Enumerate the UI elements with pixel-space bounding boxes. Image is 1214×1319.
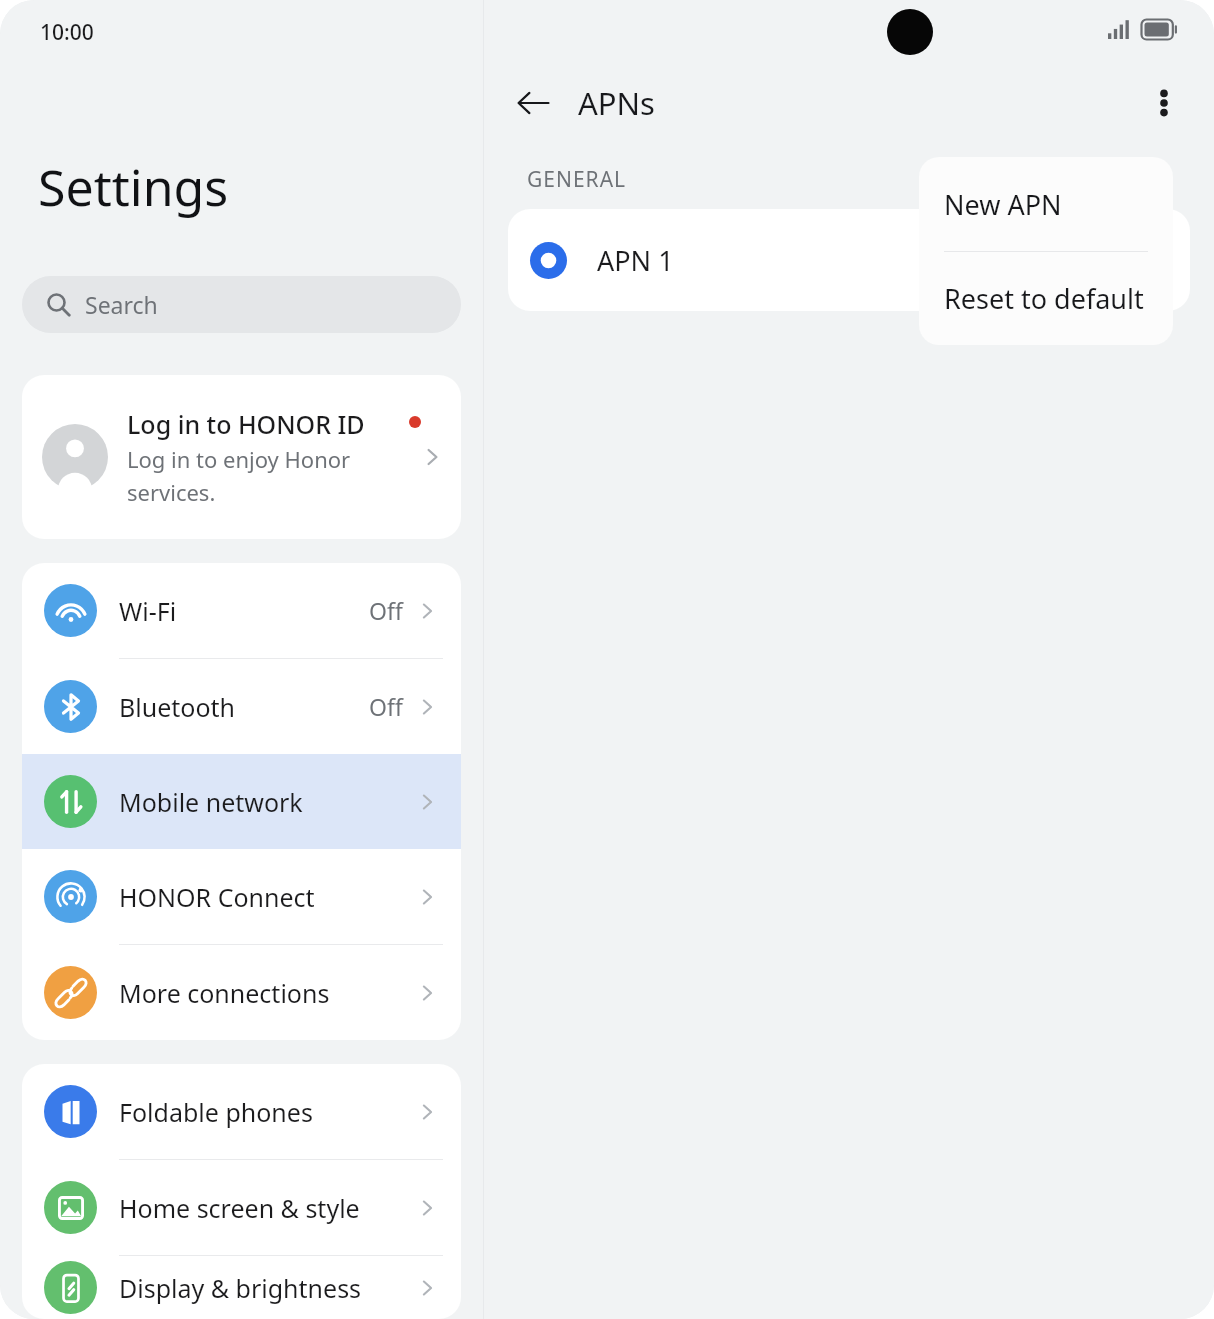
staticText: Mobile network — [119, 785, 415, 819]
staticText: Reset to default — [944, 280, 1144, 317]
button[interactable]: Search — [22, 276, 461, 333]
button[interactable]: Reset to default — [919, 252, 1173, 345]
staticText: Bluetooth — [119, 690, 369, 724]
staticText: APNs — [578, 82, 655, 124]
staticText: Settings — [38, 153, 229, 221]
staticText: HONOR Connect — [119, 880, 415, 914]
staticText: Off — [369, 691, 403, 722]
staticText: Off — [369, 595, 403, 626]
staticText: Search — [85, 289, 158, 320]
button[interactable]: Back — [505, 75, 561, 131]
staticText: Log in to enjoy Honor services. — [127, 444, 403, 507]
button[interactable]: More options — [1136, 75, 1192, 131]
staticText: More connections — [119, 976, 415, 1010]
staticText: Display & brightness — [119, 1271, 415, 1305]
button[interactable]: HONOR Connect — [22, 849, 461, 945]
staticText: New APN — [944, 186, 1062, 223]
staticText: Log in to HONOR ID — [127, 407, 365, 441]
button[interactable]: Wi-Fi — [22, 563, 461, 659]
button[interactable]: Log in to HONOR ID — [22, 375, 461, 539]
button[interactable]: New APN — [919, 157, 1173, 251]
button[interactable]: More connections — [22, 945, 461, 1040]
button[interactable]: Home screen & style — [22, 1160, 461, 1256]
staticText: Foldable phones — [119, 1095, 415, 1129]
staticText: Home screen & style — [119, 1191, 415, 1225]
staticText: Wi-Fi — [119, 594, 369, 628]
staticText: GENERAL — [527, 165, 627, 194]
button[interactable]: Bluetooth — [22, 659, 461, 754]
button[interactable]: Display & brightness — [22, 1256, 461, 1319]
button[interactable]: Mobile network — [22, 754, 461, 849]
button[interactable]: APN 1 — [508, 209, 1190, 311]
staticText: APN 1 — [597, 242, 674, 279]
staticText: 10:00 — [40, 18, 94, 47]
button[interactable]: Foldable phones — [22, 1064, 461, 1160]
